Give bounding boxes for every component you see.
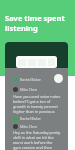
staticText: Mike Chen bbox=[20, 87, 38, 92]
staticText: listening bbox=[5, 23, 38, 33]
staticText: Rachel Baker bbox=[20, 116, 42, 121]
staticText: Have you used voice notes before? I got … bbox=[13, 94, 61, 114]
button[interactable]: Tap bbox=[54, 74, 63, 83]
staticText: Save time spent bbox=[5, 13, 65, 23]
button[interactable]: Rachel Baker bbox=[13, 76, 63, 82]
staticText: Hey so the Saturday pretty shift in what… bbox=[13, 130, 61, 150]
staticText: Mike Chen bbox=[20, 124, 38, 129]
button[interactable]: Mike Chen bbox=[13, 86, 63, 92]
button[interactable]: Mike Chen bbox=[13, 123, 63, 129]
staticText: Rachel Baker bbox=[20, 77, 42, 82]
button[interactable]: Rachel Baker bbox=[13, 115, 63, 121]
